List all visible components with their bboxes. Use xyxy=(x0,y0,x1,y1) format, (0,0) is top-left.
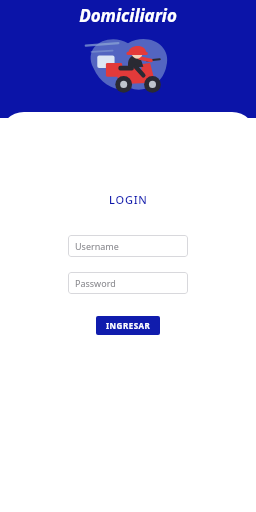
staticText: Username xyxy=(75,240,119,252)
staticText: Password xyxy=(75,277,116,289)
button[interactable]: Username xyxy=(68,235,188,257)
staticText: LOGIN xyxy=(109,192,148,207)
staticText: INGRESAR xyxy=(106,320,151,331)
staticText: Domiciliario xyxy=(0,4,256,27)
button[interactable]: INGRESAR xyxy=(96,316,160,335)
button[interactable]: Password xyxy=(68,272,188,294)
